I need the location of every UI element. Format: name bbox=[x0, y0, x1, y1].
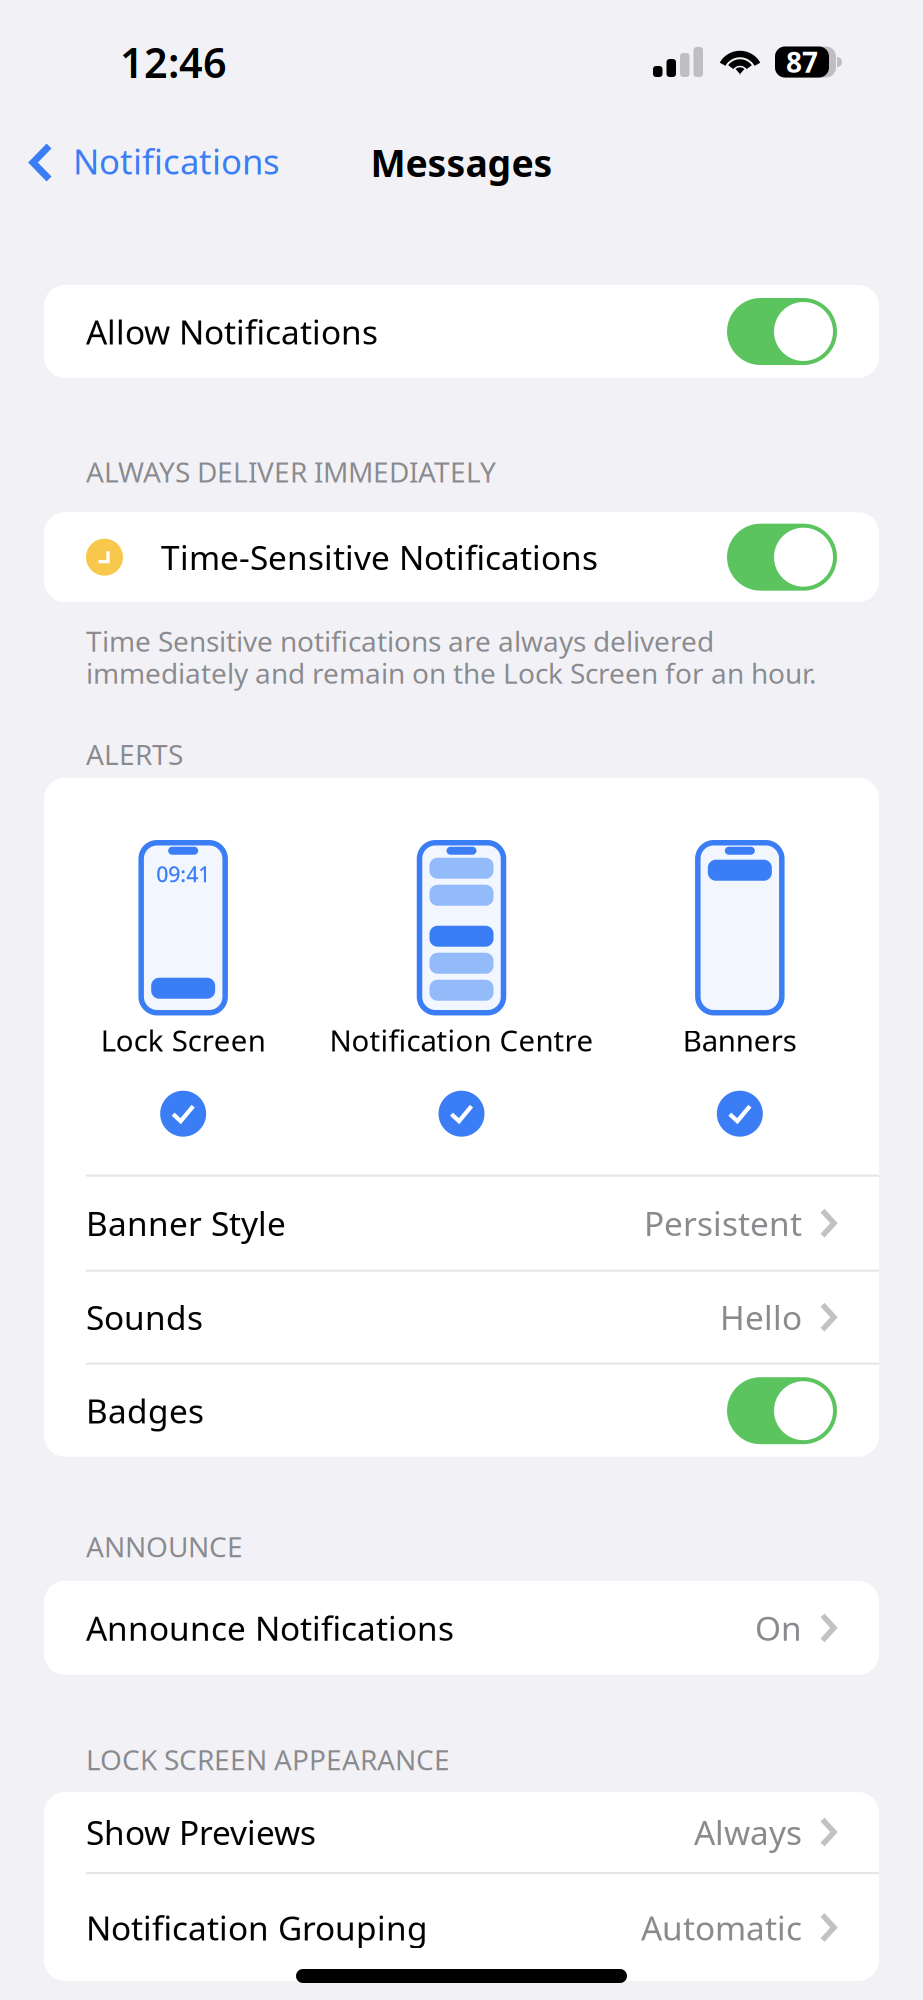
staticText: Banner Style bbox=[86, 1201, 286, 1245]
staticText: 09:41 bbox=[156, 860, 210, 888]
button[interactable]: Announce Notifications bbox=[44, 1581, 879, 1675]
staticText: Always bbox=[694, 1810, 802, 1854]
staticText: LOCK SCREEN APPEARANCE bbox=[86, 1741, 450, 1778]
staticText: Messages bbox=[370, 138, 552, 187]
button[interactable]: 09:41 bbox=[44, 843, 322, 1137]
staticText: Notification Centre bbox=[329, 1021, 593, 1060]
staticText: Notification Grouping bbox=[86, 1905, 428, 1950]
staticText: Lock Screen bbox=[101, 1021, 266, 1060]
staticText: Persistent bbox=[644, 1201, 802, 1245]
staticText: Hello bbox=[720, 1295, 802, 1339]
button[interactable]: Notification Grouping bbox=[44, 1874, 879, 1981]
staticText: ALWAYS DELIVER IMMEDIATELY bbox=[86, 453, 496, 490]
staticText: immediately and remain on the Lock Scree… bbox=[86, 654, 817, 692]
staticText: ANNOUNCE bbox=[86, 1528, 243, 1565]
button[interactable]: Time-Sensitive Notifications bbox=[44, 512, 879, 602]
staticText: Time-Sensitive Notifications bbox=[161, 535, 598, 579]
staticText: Sounds bbox=[86, 1295, 203, 1339]
staticText: 12:46 bbox=[120, 35, 227, 89]
button[interactable]: Allow Notifications bbox=[44, 285, 879, 378]
staticText: Notifications bbox=[73, 138, 280, 184]
staticText: Time Sensitive notifications are always … bbox=[86, 622, 714, 659]
button[interactable]: Show Previews bbox=[44, 1792, 879, 1872]
staticText: Banners bbox=[683, 1021, 797, 1060]
staticText: Show Previews bbox=[86, 1810, 316, 1854]
button[interactable]: Notification Centre bbox=[322, 843, 601, 1137]
staticText: Announce Notifications bbox=[86, 1606, 454, 1650]
button[interactable]: Sounds bbox=[44, 1272, 879, 1363]
button[interactable]: Banners bbox=[601, 843, 879, 1137]
staticText: Automatic bbox=[641, 1905, 802, 1950]
button[interactable]: Notifications bbox=[0, 124, 298, 200]
staticText: Allow Notifications bbox=[86, 309, 378, 354]
button[interactable]: Banner Style bbox=[44, 1177, 879, 1270]
button[interactable]: Badges bbox=[44, 1365, 879, 1457]
staticText: 87 bbox=[786, 43, 818, 81]
staticText: On bbox=[755, 1606, 802, 1650]
staticText: ALERTS bbox=[86, 735, 183, 773]
staticText: Badges bbox=[86, 1389, 204, 1433]
